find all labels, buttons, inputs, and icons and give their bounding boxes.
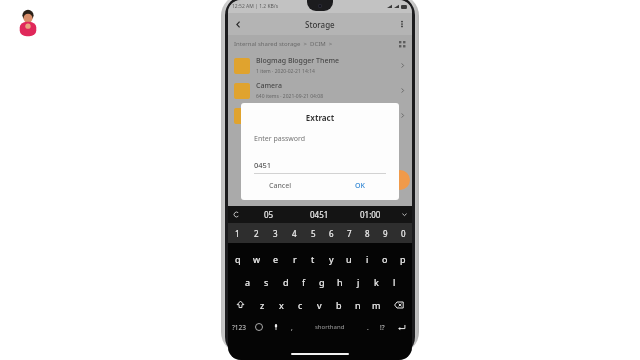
button[interactable]: e — [266, 247, 285, 270]
button[interactable]: 2 — [247, 223, 266, 243]
staticText: s — [264, 276, 269, 288]
staticText: l — [393, 276, 396, 288]
button[interactable]: . — [360, 316, 375, 338]
button[interactable]: k — [367, 270, 385, 293]
button[interactable]: z — [253, 293, 272, 316]
button[interactable]: Shift — [228, 293, 253, 316]
button[interactable]: Backspace — [386, 293, 412, 316]
button[interactable]: , — [284, 316, 299, 338]
staticText: j — [357, 276, 360, 288]
button[interactable]: Camera — [228, 78, 412, 103]
staticText: p — [400, 253, 406, 265]
button[interactable]: m — [367, 293, 386, 316]
staticText: Storage — [305, 19, 335, 30]
button[interactable]: h — [331, 270, 349, 293]
button[interactable]: More options — [392, 14, 412, 34]
staticText: 5 — [311, 228, 316, 239]
staticText: b — [336, 299, 342, 311]
staticText: Blogmag Blogger Theme — [256, 56, 340, 66]
staticText: o — [382, 253, 388, 265]
staticText: g — [319, 276, 325, 288]
staticText: 01:00 — [360, 209, 381, 220]
button[interactable]: Downloads — [228, 103, 412, 128]
button[interactable]: x — [272, 293, 291, 316]
button[interactable]: Expand suggestions — [396, 206, 412, 223]
button[interactable]: w — [247, 247, 266, 270]
staticText: . — [367, 323, 369, 332]
staticText: a — [245, 276, 251, 288]
button[interactable]: Cancel — [241, 174, 320, 198]
button[interactable]: 01:00 — [345, 206, 396, 223]
staticText: f — [302, 276, 306, 288]
staticText: 1 — [235, 228, 240, 239]
staticText: !? — [380, 323, 385, 332]
staticText: c — [298, 299, 303, 311]
button[interactable]: v — [310, 293, 329, 316]
button[interactable]: t — [304, 247, 322, 270]
button[interactable]: Space — [299, 316, 360, 338]
staticText: z — [260, 299, 265, 311]
button[interactable]: b — [329, 293, 348, 316]
staticText: t — [311, 253, 315, 265]
staticText: 2 — [254, 228, 259, 239]
staticText: 0451 — [254, 160, 272, 170]
button[interactable]: 4 — [285, 223, 304, 243]
button[interactable]: y — [322, 247, 340, 270]
button[interactable]: j — [349, 270, 367, 293]
staticText: 8 — [365, 228, 370, 239]
staticText: 3 — [273, 228, 278, 239]
staticText: v — [317, 299, 322, 311]
button[interactable]: Add — [390, 170, 410, 190]
button[interactable]: Internal shared storage > DCIM > — [228, 35, 412, 53]
button[interactable]: n — [348, 293, 367, 316]
button[interactable]: 0451 — [294, 206, 345, 223]
staticText: Enter password — [254, 134, 306, 144]
button[interactable]: 8 — [358, 223, 376, 243]
button[interactable]: r — [285, 247, 304, 270]
button[interactable]: Blogmag Blogger Theme — [228, 53, 412, 78]
button[interactable]: 7 — [340, 223, 358, 243]
button[interactable]: o — [376, 247, 394, 270]
staticText: i — [366, 253, 369, 265]
button[interactable]: q — [228, 247, 247, 270]
button[interactable]: 05 — [244, 206, 294, 223]
button[interactable]: 3 — [266, 223, 285, 243]
button[interactable]: Back — [228, 14, 248, 34]
staticText: 12 items · 2021-08-02 11:20 — [256, 118, 321, 125]
button[interactable]: c — [291, 293, 310, 316]
staticText: 4 — [292, 228, 297, 239]
staticText: w — [253, 253, 261, 265]
button[interactable]: u — [340, 247, 358, 270]
button[interactable]: Voice input — [228, 206, 244, 223]
staticText: 05 — [264, 209, 274, 220]
staticText: shorthand — [315, 323, 345, 331]
button[interactable]: !? — [375, 316, 390, 338]
staticText: d — [283, 276, 289, 288]
button[interactable]: l — [385, 270, 403, 293]
button[interactable]: Voice — [267, 316, 284, 338]
staticText: 0 — [401, 228, 406, 239]
button[interactable]: 6 — [322, 223, 340, 243]
button[interactable]: s — [257, 270, 276, 293]
button[interactable]: a — [238, 270, 257, 293]
button[interactable]: 5 — [304, 223, 322, 243]
button[interactable]: 1 — [228, 223, 247, 243]
staticText: q — [235, 253, 241, 265]
staticText: k — [374, 276, 379, 288]
button[interactable]: OK — [320, 174, 399, 198]
button[interactable]: 0 — [394, 223, 412, 243]
staticText: 9 — [383, 228, 388, 239]
button[interactable]: d — [276, 270, 295, 293]
staticText: u — [346, 253, 352, 265]
button[interactable]: 9 — [376, 223, 394, 243]
button[interactable]: p — [394, 247, 412, 270]
button[interactable]: f — [295, 270, 313, 293]
button[interactable]: Emoji — [250, 316, 267, 338]
button[interactable]: Enter — [390, 316, 412, 338]
staticText: h — [337, 276, 343, 288]
button[interactable]: i — [358, 247, 376, 270]
staticText: x — [279, 299, 284, 311]
button[interactable]: ?123 — [228, 316, 250, 338]
button[interactable]: g — [313, 270, 331, 293]
